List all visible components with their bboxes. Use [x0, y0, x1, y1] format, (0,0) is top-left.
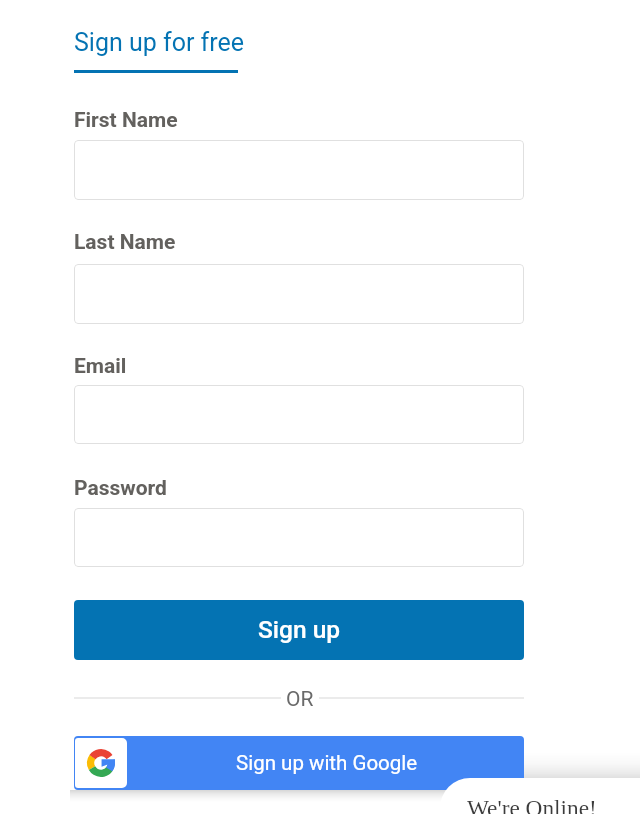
staticText: We're Online! [467, 795, 597, 814]
button[interactable]: Email [74, 385, 524, 444]
button[interactable]: Google [74, 736, 524, 790]
staticText: Sign up [258, 615, 341, 644]
button[interactable]: Sign up [74, 600, 524, 660]
staticText: Sign up with Google [236, 751, 418, 775]
other: Google [75, 738, 127, 788]
staticText: OR [286, 687, 314, 712]
button[interactable]: We're Online! [440, 778, 640, 814]
staticText: First Name [74, 108, 178, 133]
staticText: Email [74, 354, 127, 379]
button[interactable]: Password [74, 508, 524, 567]
staticText: Sign up for free [74, 28, 245, 57]
staticText: Password [74, 476, 167, 501]
staticText: Last Name [74, 230, 176, 255]
button[interactable]: Last Name [74, 264, 524, 324]
button[interactable]: First Name [74, 140, 524, 200]
